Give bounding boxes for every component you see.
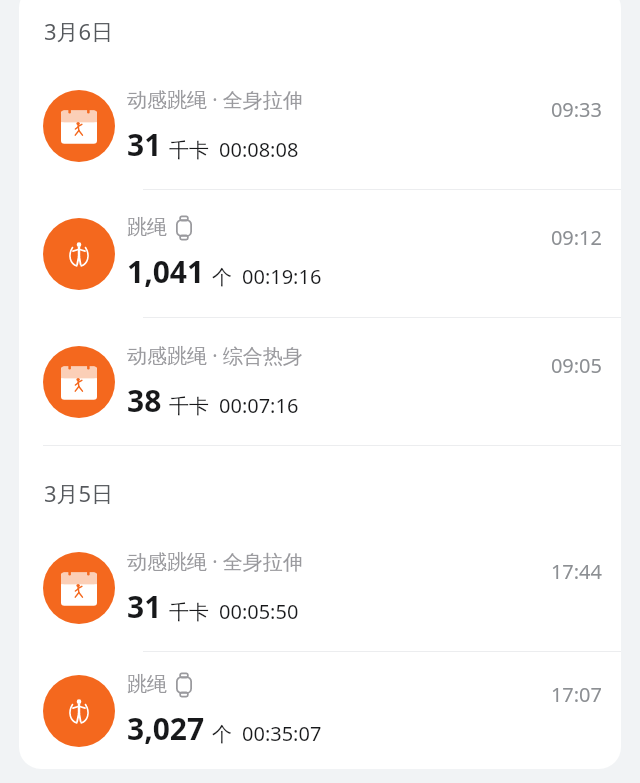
other: Recorded by watch — [176, 216, 192, 240]
staticText: 09:12 — [550, 224, 602, 251]
staticText: 跳绳 — [127, 672, 167, 697]
button[interactable]: 动感跳绳 · 全身拉伸 — [19, 62, 621, 189]
staticText: 千卡 — [169, 394, 209, 419]
staticText: 个 — [212, 722, 232, 747]
staticText: 动感跳绳 · 全身拉伸 — [127, 548, 303, 575]
staticText: 31 — [127, 124, 162, 165]
staticText: 00:05:50 — [219, 598, 299, 625]
staticText: 38 — [127, 380, 162, 421]
staticText: 00:35:07 — [242, 720, 322, 747]
staticText: 3月6日 — [44, 16, 114, 46]
staticText: 跳绳 — [127, 215, 167, 240]
staticText: 1,041 — [127, 251, 205, 292]
button[interactable]: 跳绳 — [19, 190, 621, 317]
staticText: 3月5日 — [44, 478, 114, 508]
button[interactable]: 跳绳 — [19, 652, 621, 769]
staticText: 17:44 — [550, 558, 602, 585]
staticText: 00:07:16 — [219, 392, 299, 419]
staticText: 17:07 — [550, 681, 602, 708]
button[interactable]: 动感跳绳 · 综合热身 — [19, 318, 621, 445]
staticText: 动感跳绳 · 综合热身 — [127, 342, 303, 369]
staticText: 3,027 — [127, 708, 205, 749]
staticText: 千卡 — [169, 600, 209, 625]
staticText: 00:08:08 — [219, 136, 299, 163]
other: Recorded by watch — [176, 673, 192, 697]
staticText: 09:33 — [550, 96, 602, 123]
button[interactable]: 动感跳绳 · 全身拉伸 — [19, 524, 621, 651]
staticText: 00:19:16 — [242, 263, 322, 290]
staticText: 09:05 — [550, 352, 602, 379]
staticText: 动感跳绳 · 全身拉伸 — [127, 86, 303, 113]
staticText: 个 — [212, 265, 232, 290]
staticText: 31 — [127, 586, 162, 627]
staticText: 千卡 — [169, 138, 209, 163]
